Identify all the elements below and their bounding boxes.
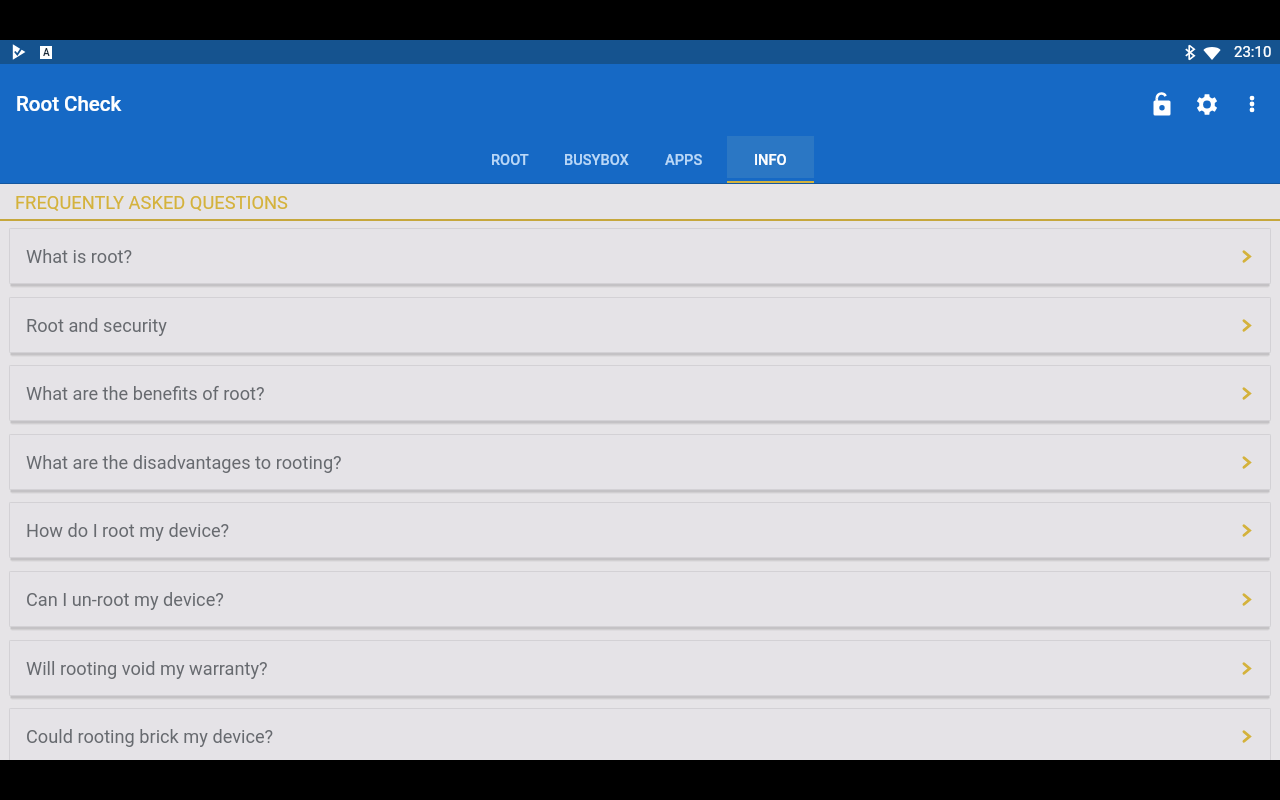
- button[interactable]: Will rooting void my warranty?: [9, 640, 1271, 696]
- staticText: Can I un-root my device?: [26, 589, 224, 610]
- staticText: FREQUENTLY ASKED QUESTIONS: [15, 192, 288, 213]
- button[interactable]: Settings: [1184, 78, 1229, 126]
- button[interactable]: ROOT: [466, 136, 553, 184]
- button[interactable]: What is root?: [9, 228, 1271, 284]
- staticText: APPS: [665, 151, 703, 168]
- staticText: INFO: [754, 151, 787, 168]
- staticText: Root Check: [16, 92, 122, 116]
- button[interactable]: Can I un-root my device?: [9, 571, 1271, 627]
- button[interactable]: Unlock root access: [1139, 78, 1184, 126]
- button[interactable]: What are the benefits of root?: [9, 365, 1271, 421]
- staticText: How do I root my device?: [26, 520, 230, 541]
- staticText: 23:10: [1234, 43, 1272, 61]
- staticText: What are the disadvantages to rooting?: [26, 452, 342, 473]
- button[interactable]: INFO: [727, 136, 814, 184]
- staticText: What is root?: [26, 246, 133, 267]
- button[interactable]: More options: [1229, 78, 1275, 126]
- button[interactable]: APPS: [640, 136, 727, 184]
- staticText: Will rooting void my warranty?: [26, 658, 268, 679]
- button[interactable]: BUSYBOX: [553, 136, 640, 184]
- button[interactable]: What are the disadvantages to rooting?: [9, 434, 1271, 490]
- staticText: Root and security: [26, 315, 167, 336]
- staticText: Could rooting brick my device?: [26, 726, 274, 747]
- staticText: ROOT: [491, 151, 529, 168]
- button[interactable]: Could rooting brick my device?: [9, 708, 1271, 760]
- staticText: BUSYBOX: [564, 151, 629, 168]
- staticText: A: [43, 47, 50, 59]
- button[interactable]: Root and security: [9, 297, 1271, 353]
- staticText: What are the benefits of root?: [26, 383, 265, 404]
- button[interactable]: How do I root my device?: [9, 502, 1271, 558]
